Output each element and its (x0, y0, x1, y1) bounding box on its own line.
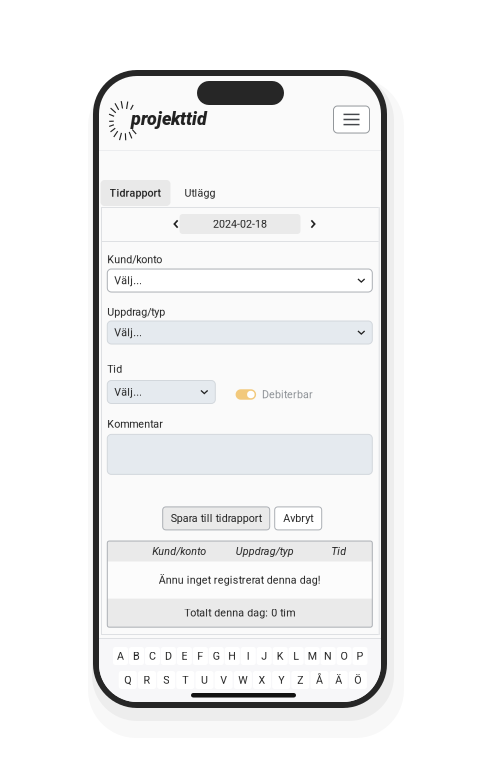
staticText: N (324, 650, 332, 662)
button[interactable]: Välj... (107, 380, 215, 403)
staticText: D (165, 650, 172, 662)
staticText: G (213, 650, 220, 662)
button[interactable]: F (193, 647, 208, 665)
button[interactable]: I (241, 647, 256, 665)
staticText: Tid (107, 363, 122, 375)
staticText: Å (316, 674, 323, 686)
button[interactable]: Ä (330, 671, 348, 689)
button[interactable]: M (305, 647, 320, 665)
staticText: Välj... (114, 274, 142, 287)
staticText: C (149, 650, 156, 662)
staticText: T (182, 674, 188, 686)
staticText: Y (278, 674, 284, 686)
staticText: A (117, 650, 124, 662)
button[interactable]: Välj... (107, 321, 372, 344)
button[interactable]: L (289, 647, 304, 665)
button[interactable]: Tidrapport (100, 180, 170, 206)
button[interactable]: Utlägg (174, 180, 226, 206)
staticText: K (277, 650, 284, 662)
staticText: 2024-02-18 (213, 218, 267, 230)
button[interactable]: Next day (305, 214, 321, 234)
button[interactable]: Ö (349, 671, 367, 689)
button[interactable]: E (177, 647, 192, 665)
button[interactable]: Z (291, 671, 309, 689)
staticText: Kommentar (107, 418, 163, 430)
staticText: F (197, 650, 203, 662)
button[interactable]: R (138, 671, 156, 689)
staticText: Kund/konto (107, 253, 162, 266)
staticText: L (293, 650, 299, 662)
button[interactable]: U (195, 671, 213, 689)
button[interactable]: 2024-02-18 (179, 214, 300, 234)
staticText: Ä (335, 674, 342, 686)
staticText: O (341, 650, 348, 662)
staticText: Uppdrag/typ (236, 545, 294, 558)
button[interactable]: Previous day (168, 214, 184, 234)
button[interactable]: D (161, 647, 176, 665)
staticText: R (143, 674, 150, 686)
staticText: Ännu inget registrerat denna dag! (159, 574, 321, 586)
staticText: Q (124, 674, 131, 686)
button[interactable]: Å (310, 671, 328, 689)
staticText: Välj... (114, 386, 142, 398)
staticText: Totalt denna dag: 0 tim (184, 607, 295, 619)
button[interactable]: Välj... (107, 269, 372, 292)
staticText: S (163, 674, 169, 686)
button[interactable]: V (215, 671, 233, 689)
staticText: P (357, 650, 364, 662)
button[interactable]: Q (119, 671, 137, 689)
staticText: W (238, 674, 247, 686)
staticText: Utlägg (184, 187, 215, 199)
staticText: Tidrapport (109, 187, 161, 199)
button[interactable]: B (129, 647, 144, 665)
staticText: projekttid (131, 108, 207, 129)
button[interactable]: Menu (333, 106, 369, 133)
staticText: B (133, 650, 140, 662)
button[interactable]: Y (272, 671, 290, 689)
staticText: Debiterbar (262, 388, 313, 401)
staticText: Avbryt (283, 512, 313, 525)
button[interactable]: Debiterbar (236, 386, 356, 402)
button[interactable]: P (353, 647, 368, 665)
staticText: X (258, 674, 265, 686)
staticText: H (228, 650, 236, 662)
button[interactable]: T (176, 671, 194, 689)
button[interactable]: C (145, 647, 160, 665)
staticText: M (308, 650, 317, 662)
button[interactable]: N (321, 647, 336, 665)
staticText: Z (297, 674, 303, 686)
button[interactable]: W (234, 671, 252, 689)
button[interactable]: K (273, 647, 288, 665)
button[interactable]: G (209, 647, 224, 665)
staticText: Uppdrag/typ (107, 306, 165, 318)
button[interactable]: A (113, 647, 128, 665)
staticText: J (261, 650, 267, 662)
button[interactable]: J (257, 647, 272, 665)
button[interactable]: S (157, 671, 175, 689)
staticText: Ö (354, 674, 361, 686)
staticText: Tid (331, 545, 346, 558)
staticText: V (220, 674, 227, 686)
staticText: U (201, 674, 208, 686)
staticText: E (181, 650, 187, 662)
staticText: I (247, 650, 250, 662)
staticText: Spara till tidrapport (171, 512, 262, 525)
button[interactable]: H (225, 647, 240, 665)
button[interactable]: O (337, 647, 352, 665)
staticText: Kund/konto (152, 545, 206, 558)
button[interactable]: Avbryt (275, 507, 322, 530)
button[interactable]: X (253, 671, 271, 689)
button[interactable]: Spara till tidrapport (163, 507, 270, 530)
staticText: Välj... (114, 326, 142, 339)
